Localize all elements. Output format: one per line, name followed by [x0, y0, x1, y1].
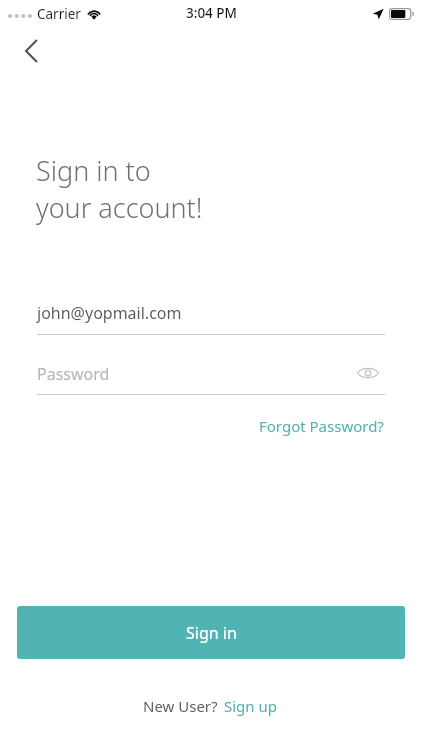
- button[interactable]: Password: [37, 356, 385, 395]
- button[interactable]: Sign up: [222, 693, 279, 719]
- button[interactable]: Show password: [351, 356, 385, 390]
- staticText: your account!: [36, 189, 203, 226]
- button[interactable]: Back: [10, 30, 52, 72]
- staticText: Sign in to: [36, 152, 151, 189]
- staticText: 3:04 PM: [186, 4, 237, 22]
- staticText: Sign up: [224, 696, 277, 716]
- staticText: Carrier: [37, 5, 81, 23]
- staticText: Password: [37, 363, 110, 385]
- staticText: Forgot Password?: [259, 416, 384, 436]
- button[interactable]: Sign in: [17, 606, 405, 659]
- staticText: Sign in: [186, 622, 237, 644]
- button[interactable]: Forgot Password?: [259, 416, 384, 436]
- button[interactable]: john@yopmail.com: [37, 295, 385, 335]
- staticText: New User?: [143, 696, 218, 716]
- staticText: john@yopmail.com: [37, 302, 182, 324]
